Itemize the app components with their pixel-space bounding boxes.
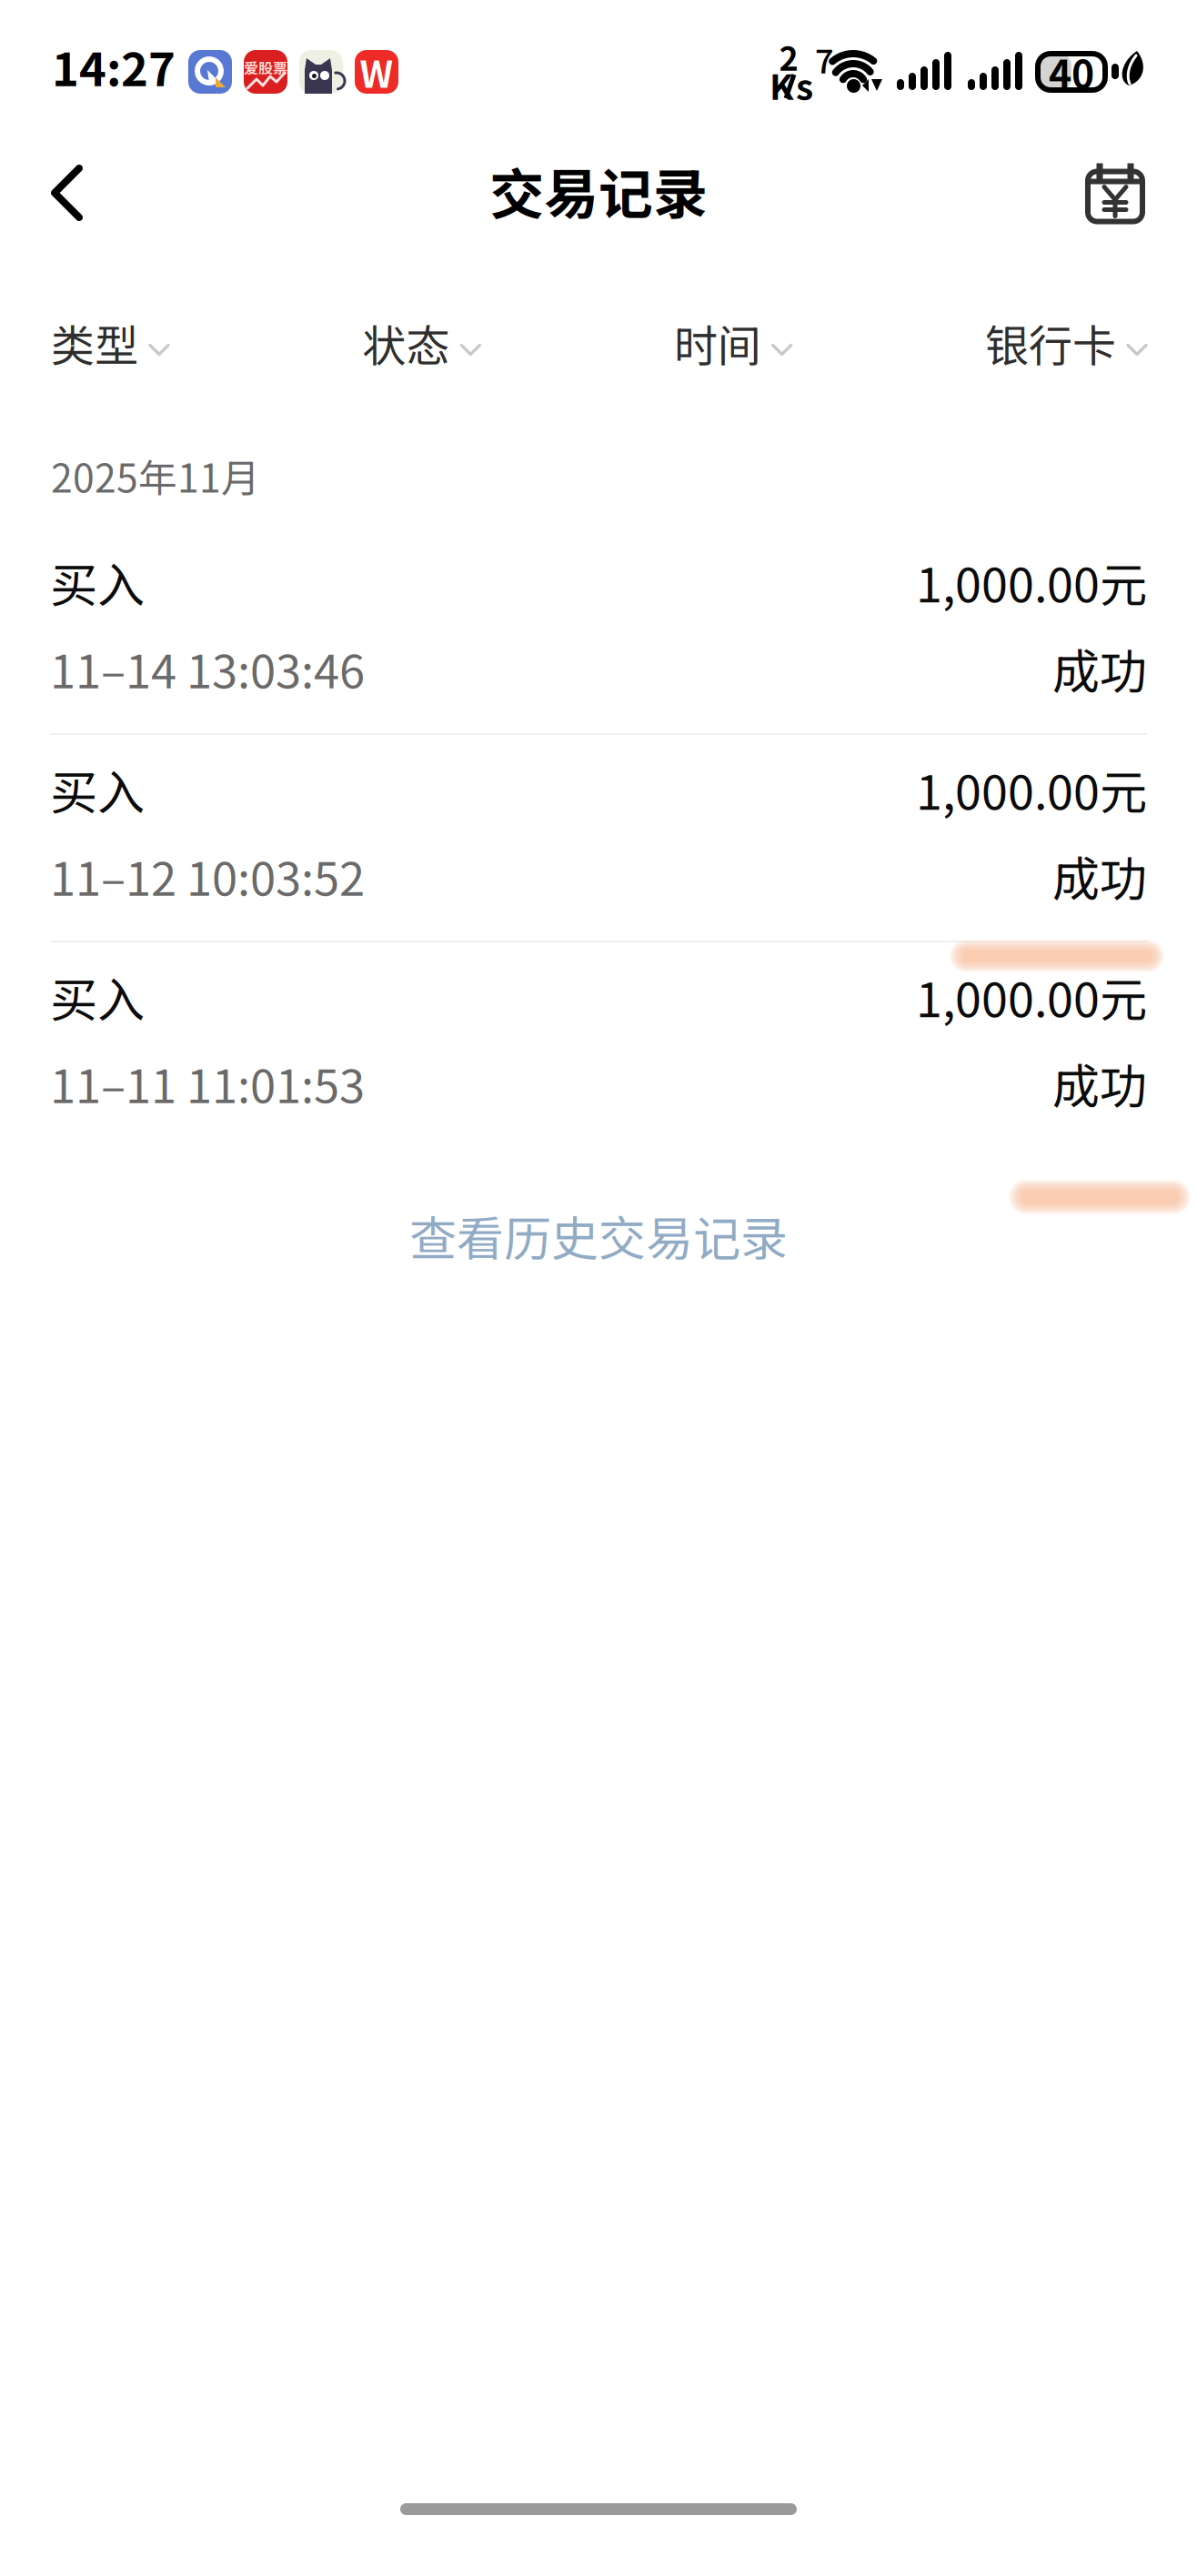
staticText: 1,000.00元 [916, 548, 1147, 616]
staticText: 类型 [51, 311, 138, 374]
staticText: 时间 [674, 311, 761, 374]
button[interactable]: 返回 [16, 144, 118, 246]
staticText: 7 [815, 35, 834, 83]
button[interactable]: 时间 [674, 304, 793, 382]
button[interactable]: 类型 [51, 304, 170, 382]
staticText: 状态 [362, 311, 450, 374]
staticText: 成功 [1052, 841, 1147, 910]
staticText: 1,000.00元 [916, 755, 1147, 823]
staticText: 交易记录 [489, 151, 708, 230]
staticText: s [796, 59, 813, 110]
staticText: 1,000.00元 [916, 962, 1147, 1031]
button[interactable]: 按月份筛选 [1064, 143, 1166, 245]
staticText: 2 [779, 33, 798, 80]
staticText: 买入 [50, 755, 145, 823]
staticText: 爱股票 [244, 57, 287, 78]
button[interactable]: 银行卡 [985, 304, 1148, 382]
button[interactable]: 买入 [50, 548, 1147, 750]
staticText: 14:27 [52, 33, 176, 100]
staticText: 成功 [1052, 1049, 1147, 1117]
staticText: 买入 [50, 548, 145, 616]
button[interactable]: 买入 [50, 962, 1147, 1164]
button[interactable]: 状态 [362, 304, 481, 382]
staticText: 40 [1049, 44, 1094, 100]
button[interactable]: 买入 [50, 755, 1147, 957]
staticText: 银行卡 [985, 311, 1116, 374]
staticText: W [360, 45, 393, 98]
staticText: 11–11 11:01:53 [50, 1050, 365, 1116]
staticText: 成功 [1052, 634, 1147, 702]
staticText: K [769, 59, 794, 110]
staticText: 查看历史交易记录 [409, 1201, 788, 1270]
staticText: 11–12 10:03:52 [50, 842, 365, 909]
staticText: 买入 [50, 962, 145, 1031]
staticText: 2025年11月 [51, 448, 260, 504]
staticText: 11–14 13:03:46 [50, 635, 365, 702]
button[interactable]: 查看历史交易记录 [0, 1181, 1197, 1290]
